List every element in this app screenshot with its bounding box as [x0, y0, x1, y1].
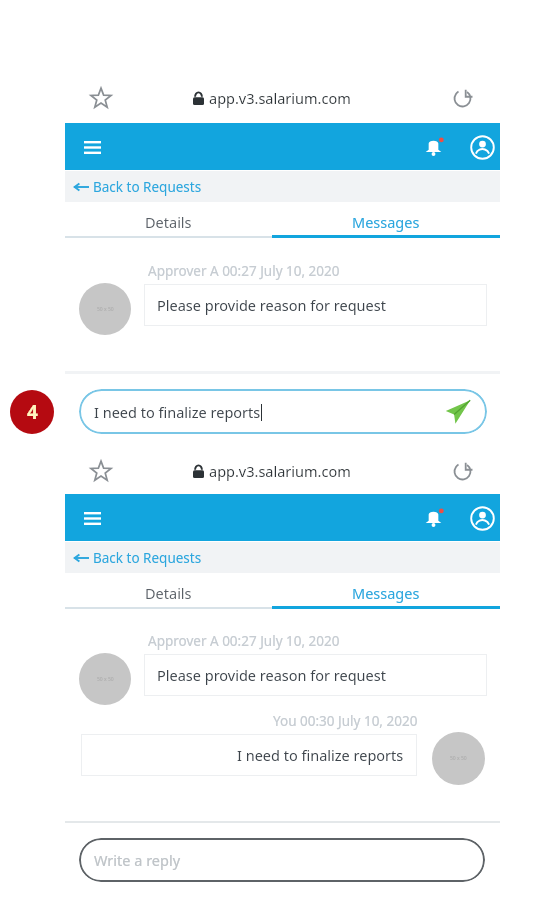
staticText: I need to finalize reports — [237, 745, 404, 765]
button[interactable]: Reload — [446, 455, 478, 487]
staticText: Details — [145, 583, 192, 603]
button[interactable]: Write a reply — [79, 838, 485, 882]
button[interactable]: Account — [463, 499, 501, 537]
staticText: Back to Requests — [93, 549, 202, 567]
button[interactable]: Send — [443, 397, 473, 427]
staticText: app.v3.salarium.com — [209, 461, 351, 481]
button[interactable]: Bookmark — [85, 82, 117, 114]
button[interactable]: Account — [463, 128, 501, 166]
button[interactable]: Details — [65, 208, 272, 236]
button[interactable]: Messages — [272, 208, 500, 236]
staticText: You 00:30 July 10, 2020 — [273, 712, 418, 730]
button[interactable]: Notifications — [415, 129, 451, 165]
button[interactable]: I need to finalize reports — [79, 389, 487, 434]
button[interactable]: Back to Requests — [74, 542, 202, 573]
staticText: Write a reply — [94, 850, 181, 870]
staticText: Messages — [352, 212, 420, 232]
staticText: Details — [145, 212, 192, 232]
staticText: Please provide reason for request — [157, 295, 386, 315]
staticText: Approver A 00:27 July 10, 2020 — [148, 632, 340, 650]
staticText: app.v3.salarium.com — [209, 88, 351, 108]
staticText: 4 — [27, 399, 38, 425]
staticText: Approver A 00:27 July 10, 2020 — [148, 262, 340, 280]
staticText: Back to Requests — [93, 178, 202, 196]
button[interactable]: Menu — [75, 130, 109, 164]
button[interactable]: Back to Requests — [74, 171, 202, 202]
staticText: 50 x 50 — [450, 755, 467, 762]
staticText: 50 x 50 — [97, 676, 114, 683]
staticText: 50 x 50 — [97, 306, 114, 313]
staticText: Messages — [352, 583, 420, 603]
staticText: Please provide reason for request — [157, 665, 386, 685]
button[interactable]: Reload — [446, 82, 478, 114]
button[interactable]: Details — [65, 579, 272, 607]
button[interactable]: Bookmark — [85, 455, 117, 487]
button[interactable]: Notifications — [415, 500, 451, 536]
staticText: I need to finalize reports — [94, 402, 261, 422]
button[interactable]: Menu — [75, 501, 109, 535]
button[interactable]: Messages — [272, 579, 500, 607]
